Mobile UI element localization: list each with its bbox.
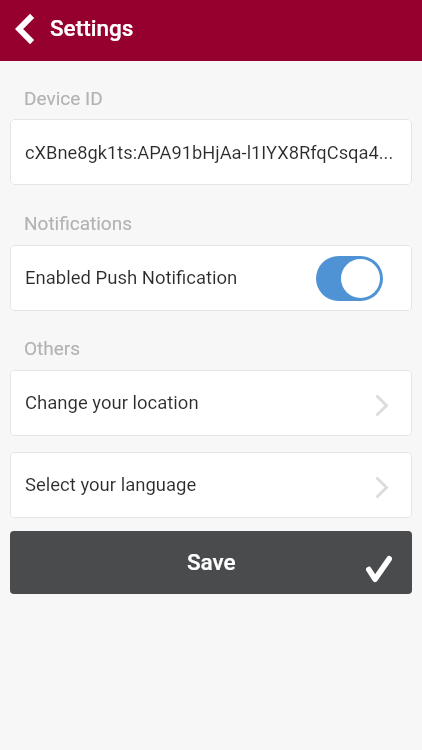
staticText: Select your language <box>25 474 197 496</box>
staticText: Settings <box>50 15 134 41</box>
staticText: Notifications <box>24 212 133 234</box>
staticText: Enabled Push Notification <box>25 267 238 289</box>
staticText: Others <box>24 337 81 359</box>
button[interactable]: Enabled Push Notification <box>10 245 412 311</box>
button[interactable]: Enabled Push Notification toggle <box>316 256 383 301</box>
button[interactable]: Save <box>10 531 412 594</box>
staticText: cXBne8gk1ts:APA91bHjAa-l1IYX8RfqCsqa4... <box>25 142 394 163</box>
staticText: Change your location <box>25 392 199 414</box>
button[interactable]: Back <box>0 0 50 61</box>
button[interactable]: Change your location <box>10 370 412 436</box>
staticText: Save <box>187 549 236 575</box>
button[interactable]: Select your language <box>10 452 412 518</box>
staticText: Device ID <box>24 87 103 109</box>
